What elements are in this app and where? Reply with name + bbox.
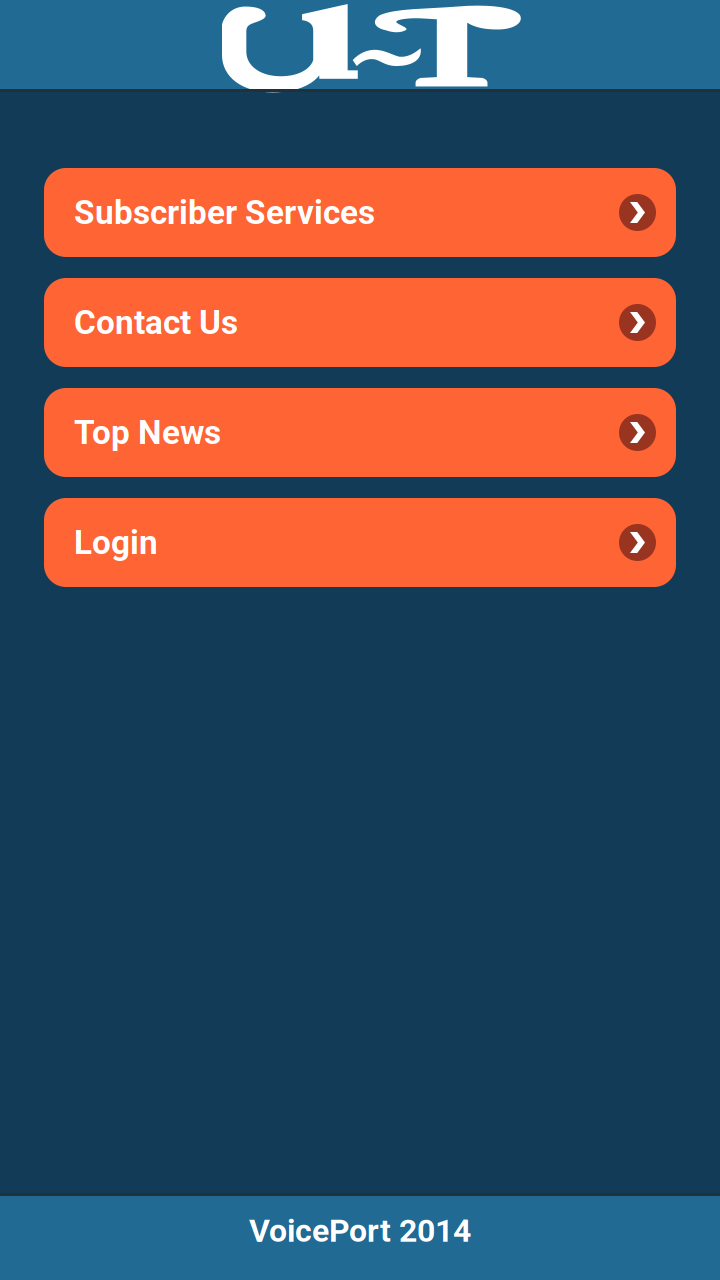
staticText: Top News (74, 413, 221, 452)
staticText: Login (74, 523, 158, 562)
button[interactable]: Contact Us (44, 278, 676, 367)
button[interactable]: Top News (44, 388, 676, 477)
button[interactable]: Login (44, 498, 676, 587)
staticText: Contact Us (74, 303, 238, 342)
button[interactable]: Subscriber Services (44, 168, 676, 257)
staticText: VoicePort 2014 (249, 1212, 471, 1249)
staticText: Subscriber Services (74, 193, 375, 232)
